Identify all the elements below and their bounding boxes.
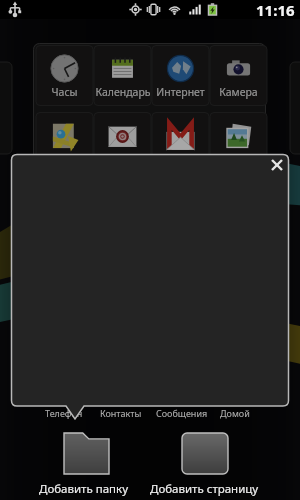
staticText: Добавить страницу <box>150 481 259 497</box>
button[interactable]: Интернет <box>152 45 209 105</box>
button[interactable] <box>152 113 209 155</box>
button[interactable]: Контакты <box>88 406 154 420</box>
button[interactable]: Часы <box>36 45 93 105</box>
button[interactable]: Сообщения <box>149 406 215 420</box>
staticText: 11:16 <box>256 0 295 19</box>
button[interactable] <box>94 113 151 155</box>
staticText: Календарь <box>95 85 151 99</box>
staticText: Сообщения <box>156 407 208 419</box>
button[interactable]: Добавить страницу <box>142 428 267 497</box>
button[interactable]: Камера <box>210 45 267 105</box>
button[interactable] <box>210 113 267 155</box>
button[interactable]: Календарь <box>94 45 151 105</box>
button[interactable]: Телефон <box>31 406 97 420</box>
staticText: Добавить папку <box>39 481 128 497</box>
button[interactable]: Close <box>267 155 287 175</box>
staticText: Телефон <box>45 407 83 419</box>
staticText: Контакты <box>100 407 142 419</box>
button[interactable]: Добавить папку <box>28 428 139 497</box>
staticText: Домой <box>220 407 250 419</box>
button[interactable] <box>36 113 93 155</box>
button[interactable]: Домой <box>202 406 268 420</box>
staticText: Камера <box>219 85 258 99</box>
staticText: Интернет <box>156 85 205 99</box>
staticText: Часы <box>51 85 78 99</box>
